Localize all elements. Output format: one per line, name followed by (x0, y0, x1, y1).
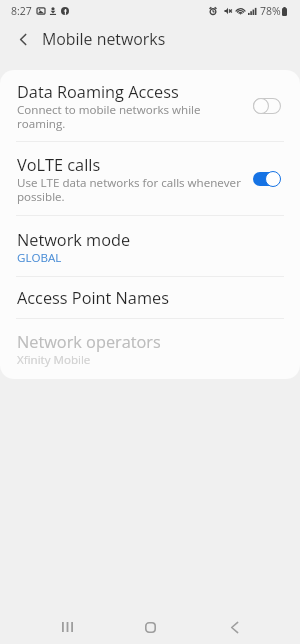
staticText: VoLTE calls (17, 154, 101, 176)
button[interactable]: Data roaming off (253, 98, 281, 114)
button[interactable]: Data Roaming Access (0, 70, 300, 142)
button[interactable]: Navigate up (5, 22, 41, 56)
staticText: Data Roaming Access (17, 81, 179, 103)
button[interactable]: Access Point Names (0, 277, 300, 319)
staticText: Xfinity Mobile (17, 353, 91, 367)
staticText: Use LTE data networks for calls whenever… (17, 176, 241, 204)
staticText: 78% (260, 4, 281, 18)
button[interactable]: VoLTE calls (0, 142, 300, 216)
staticText: Mobile networks (42, 28, 166, 50)
button[interactable]: Back (206, 610, 262, 644)
staticText: 8:27 (11, 4, 32, 18)
staticText: Connect to mobile networks while roaming… (17, 103, 201, 131)
staticText: Network mode (17, 229, 131, 251)
button[interactable]: Network operators (0, 319, 300, 379)
button[interactable]: Network mode (0, 216, 300, 277)
button[interactable]: Home (122, 610, 178, 644)
staticText: GLOBAL (17, 251, 62, 265)
staticText: Access Point Names (17, 287, 169, 309)
button[interactable]: VoLTE calls on (253, 171, 281, 187)
button[interactable]: Recent apps (39, 610, 95, 644)
staticText: Network operators (17, 331, 161, 353)
